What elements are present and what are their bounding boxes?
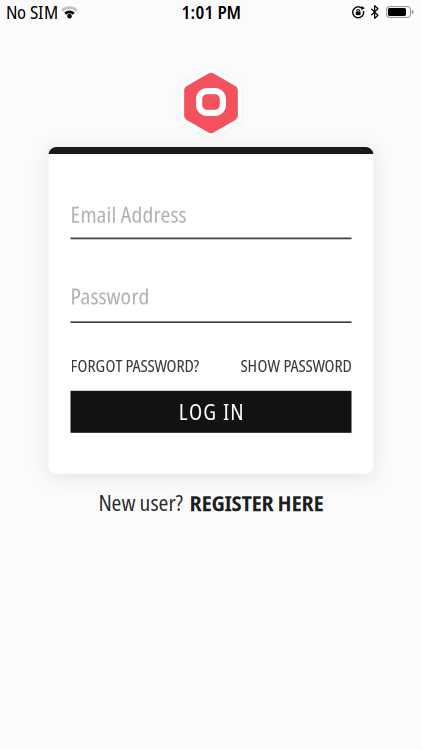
staticText: Password <box>70 282 149 311</box>
staticText: REGISTER HERE <box>189 488 323 518</box>
staticText: LOG IN <box>179 397 243 426</box>
staticText: SHOW PASSWORD <box>240 355 351 377</box>
staticText: No SIM <box>6 0 58 24</box>
staticText: New user? <box>98 488 183 517</box>
button[interactable]: LOG IN <box>70 391 351 433</box>
staticText: Email Address <box>70 200 186 229</box>
button[interactable]: SHOW PASSWORD <box>240 355 351 377</box>
staticText: FORGOT PASSWORD? <box>70 355 199 377</box>
button[interactable]: New user? <box>98 488 323 518</box>
button[interactable]: FORGOT PASSWORD? <box>70 355 199 377</box>
staticText: 1:01 PM <box>181 0 240 24</box>
